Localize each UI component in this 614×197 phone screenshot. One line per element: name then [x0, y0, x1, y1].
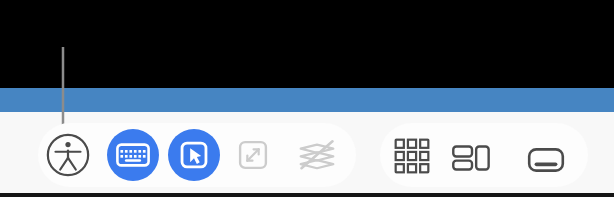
- button[interactable]: Accessibility: [44, 131, 92, 179]
- button[interactable]: Panel layout: [446, 132, 498, 184]
- button[interactable]: Keypad: [388, 132, 436, 180]
- button[interactable]: Dock: [518, 132, 574, 188]
- button[interactable]: Keyboard: [107, 129, 159, 181]
- button[interactable]: Switch control: [230, 132, 276, 178]
- button[interactable]: Pointer control: [168, 129, 220, 181]
- button[interactable]: Hide layers: [293, 132, 341, 180]
